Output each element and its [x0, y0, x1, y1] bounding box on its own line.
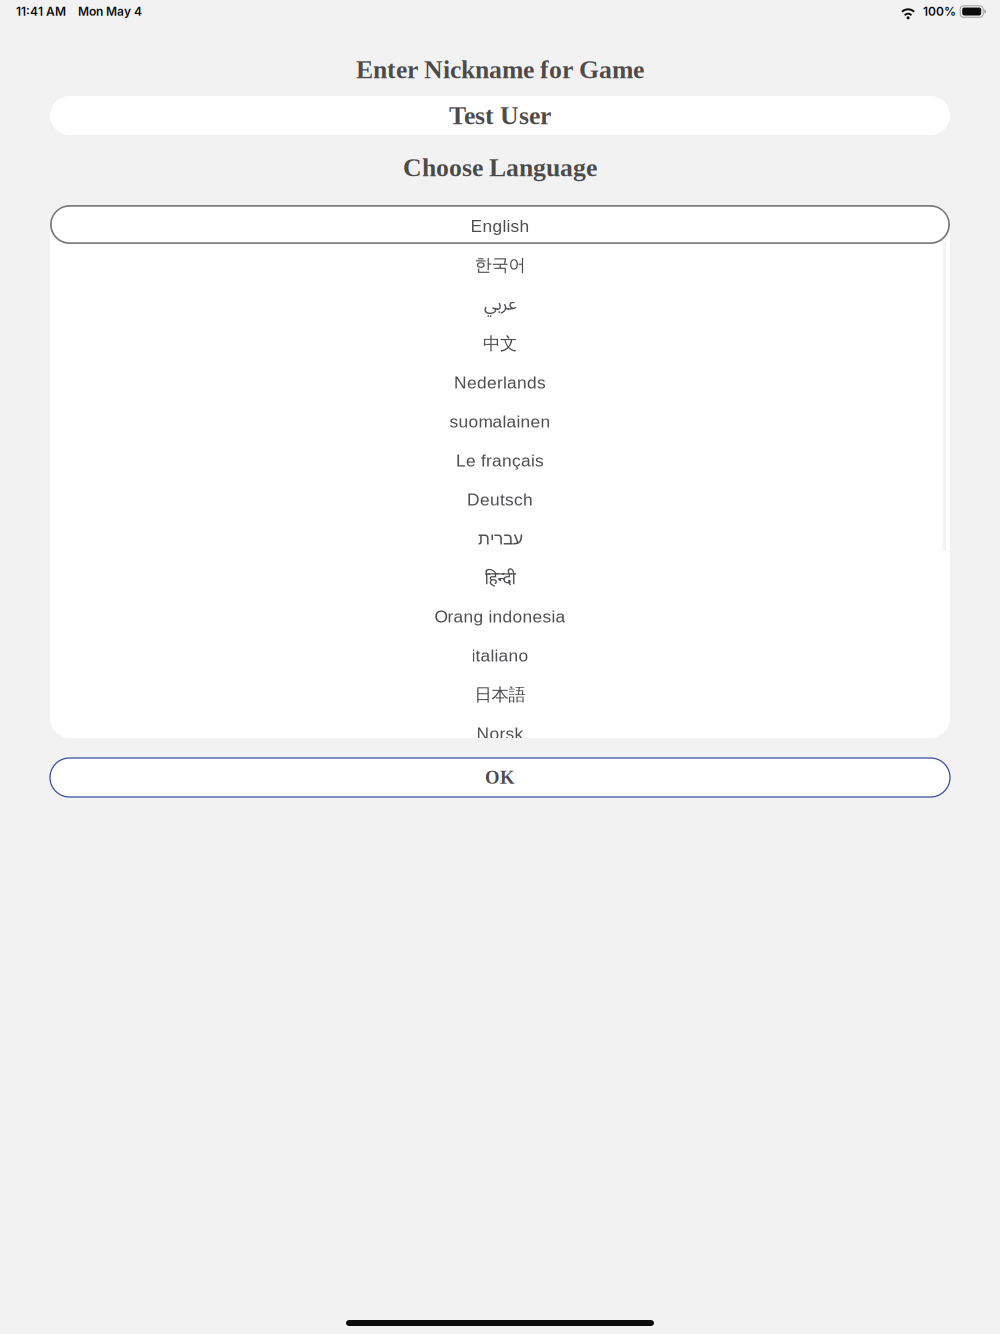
button[interactable]: Le français: [50, 440, 950, 479]
button[interactable]: عربي: [50, 283, 950, 323]
staticText: suomalainen: [449, 412, 550, 431]
staticText: 中文: [483, 333, 517, 354]
staticText: 日本語: [474, 684, 525, 705]
staticText: Le français: [456, 451, 544, 470]
staticText: 한국어: [474, 254, 525, 276]
staticText: Norsk: [476, 724, 523, 743]
staticText: عربي: [483, 286, 516, 323]
staticText: Orang indonesia: [434, 607, 565, 626]
button[interactable]: 中文: [50, 323, 950, 362]
button[interactable]: हिन्दी: [50, 557, 950, 596]
staticText: हिन्दी: [484, 566, 515, 589]
button[interactable]: עברית: [50, 518, 950, 557]
staticText: 100%: [923, 4, 956, 19]
button[interactable]: OK: [50, 758, 950, 797]
staticText: Deutsch: [467, 490, 533, 509]
staticText: Choose Language: [403, 153, 597, 182]
staticText: English: [470, 216, 529, 236]
button[interactable]: Orang indonesia: [50, 596, 950, 635]
staticText: Enter Nickname for Game: [356, 55, 644, 84]
button[interactable]: Norsk: [50, 713, 950, 752]
staticText: Test User: [449, 101, 551, 130]
button[interactable]: Nederlands: [50, 362, 950, 401]
button[interactable]: 한국어: [50, 244, 950, 283]
staticText: Nederlands: [454, 373, 546, 392]
staticText: italiano: [471, 646, 528, 665]
button[interactable]: 日本語: [50, 674, 950, 713]
button[interactable]: Test User: [50, 96, 950, 135]
staticText: Mon May 4: [78, 4, 142, 19]
button[interactable]: English: [50, 205, 950, 244]
staticText: עברית: [477, 529, 522, 548]
button[interactable]: Deutsch: [50, 479, 950, 518]
button[interactable]: suomalainen: [50, 401, 950, 440]
button[interactable]: italiano: [50, 635, 950, 674]
staticText: 11:41 AM: [16, 4, 66, 19]
staticText: OK: [485, 767, 515, 788]
